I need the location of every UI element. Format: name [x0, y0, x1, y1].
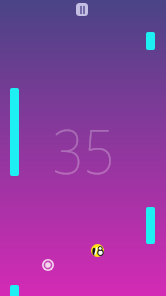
button[interactable]: Pause — [76, 3, 88, 16]
staticText: 35 — [53, 108, 114, 192]
